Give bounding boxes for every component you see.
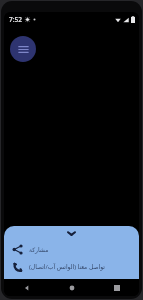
staticText: تواصل معنا (الواتس آب/اتصال): [29, 263, 131, 271]
staticText: مشاركة: [29, 246, 131, 253]
button[interactable]: Back: [16, 279, 38, 296]
button[interactable]: Recent apps: [106, 279, 128, 296]
staticText: 7:52: [9, 15, 22, 24]
button[interactable]: Collapse sheet: [4, 226, 139, 240]
button[interactable]: تواصل معنا (الواتس آب/اتصال): [4, 258, 139, 276]
button[interactable]: Open menu: [10, 36, 36, 62]
button[interactable]: Home: [61, 279, 83, 296]
button[interactable]: مشاركة: [4, 240, 139, 258]
